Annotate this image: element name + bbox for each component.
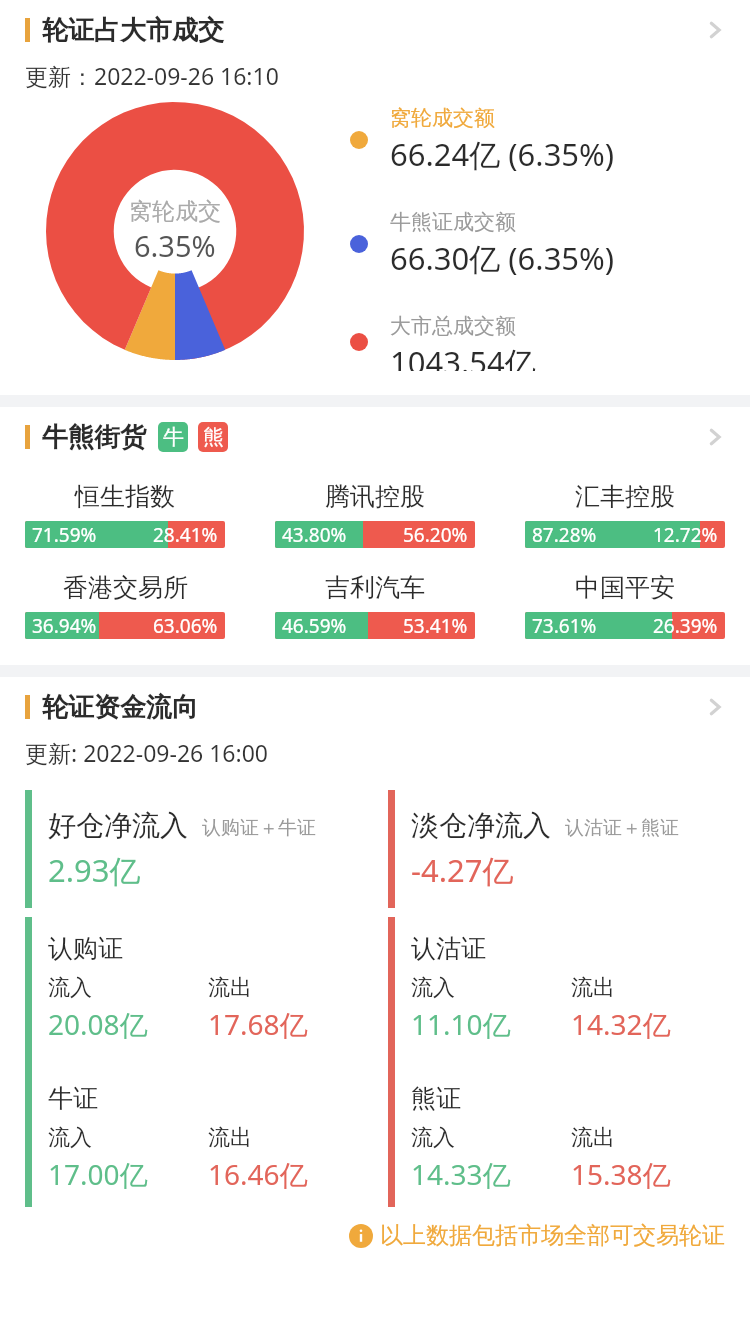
staticText: 56.20% — [403, 522, 468, 548]
button[interactable]: 窝轮成交额 — [350, 105, 750, 175]
button[interactable]: 牛熊街货 — [0, 407, 750, 467]
staticText: 11.10亿 — [411, 1005, 511, 1043]
staticText: 流出 — [571, 974, 615, 1002]
staticText: 更新: 2022-09-26 16:00 — [25, 737, 268, 768]
staticText: 63.06% — [153, 613, 218, 639]
staticText: 好仓净流入 — [48, 808, 188, 843]
staticText: 流出 — [208, 1124, 252, 1152]
staticText: 窝轮成交额 — [390, 105, 495, 131]
staticText: 淡仓净流入 — [411, 808, 551, 843]
staticText: 46.59% — [282, 613, 347, 639]
staticText: 大市总成交额 — [390, 313, 516, 339]
staticText: 36.94% — [32, 613, 97, 639]
button[interactable]: 轮证占大市成交 — [0, 0, 750, 60]
staticText: 熊 — [203, 424, 224, 450]
staticText: 恒生指数 — [75, 481, 175, 512]
staticText: 腾讯控股 — [325, 481, 425, 512]
button[interactable]: 大市总成交额 — [350, 313, 750, 371]
button[interactable]: 以上数据包括市场全部可交易轮证 — [0, 1221, 750, 1250]
staticText: 12.72% — [653, 522, 718, 548]
button[interactable]: More 牛熊街货 — [690, 412, 740, 462]
staticText: 牛 — [163, 424, 184, 450]
staticText: 流入 — [411, 1124, 455, 1152]
staticText: 20.08亿 — [48, 1005, 148, 1043]
staticText: 14.33亿 — [411, 1155, 511, 1193]
staticText: 28.41% — [153, 522, 218, 548]
staticText: 流入 — [411, 974, 455, 1002]
staticText: 认购证 — [48, 933, 123, 964]
button[interactable]: 轮证资金流向 — [0, 677, 750, 737]
staticText: 6.35% — [134, 226, 216, 265]
staticText: 轮证占大市成交 — [42, 14, 224, 47]
staticText: 16.46亿 — [208, 1155, 308, 1193]
button[interactable]: 43.80% — [275, 521, 475, 548]
staticText: 流入 — [48, 974, 92, 1002]
button[interactable]: 73.61% — [525, 612, 725, 639]
staticText: 66.30亿 (6.35%) — [390, 237, 615, 279]
staticText: 牛熊证成交额 — [390, 209, 516, 235]
staticText: 17.68亿 — [208, 1005, 308, 1043]
staticText: 1043.54亿 — [390, 341, 536, 371]
button[interactable]: More 轮证资金流向 — [690, 682, 740, 732]
staticText: 26.39% — [653, 613, 718, 639]
staticText: 牛熊街货 — [42, 421, 146, 454]
button[interactable]: More 轮证占大市成交 — [690, 5, 740, 55]
button[interactable]: 牛熊证成交额 — [350, 209, 750, 279]
button[interactable]: 认购证 — [25, 917, 378, 1207]
button[interactable]: 认沽证 — [388, 917, 725, 1207]
button[interactable]: 好仓净流入 — [25, 790, 378, 908]
button[interactable]: 46.59% — [275, 612, 475, 639]
staticText: 71.59% — [32, 522, 97, 548]
button[interactable]: 淡仓净流入 — [388, 790, 725, 908]
staticText: 香港交易所 — [63, 572, 188, 603]
button[interactable]: 87.28% — [525, 521, 725, 548]
staticText: 更新：2022-09-26 16:10 — [25, 60, 279, 91]
staticText: 73.61% — [532, 613, 597, 639]
staticText: 轮证资金流向 — [42, 691, 198, 724]
staticText: 认沽证＋熊证 — [565, 816, 679, 840]
staticText: 以上数据包括市场全部可交易轮证 — [380, 1221, 725, 1250]
button[interactable]: 71.59% — [25, 521, 225, 548]
staticText: 汇丰控股 — [575, 481, 675, 512]
staticText: 流入 — [48, 1124, 92, 1152]
staticText: 流出 — [571, 1124, 615, 1152]
staticText: 43.80% — [282, 522, 347, 548]
staticText: 牛证 — [48, 1083, 98, 1114]
staticText: 中国平安 — [575, 572, 675, 603]
staticText: 认购证＋牛证 — [202, 816, 316, 840]
staticText: 吉利汽车 — [325, 572, 425, 603]
staticText: 53.41% — [403, 613, 468, 639]
staticText: 14.32亿 — [571, 1005, 671, 1043]
staticText: 2.93亿 — [48, 849, 141, 891]
staticText: 17.00亿 — [48, 1155, 148, 1193]
button[interactable]: 36.94% — [25, 612, 225, 639]
staticText: 熊证 — [411, 1083, 461, 1114]
staticText: 87.28% — [532, 522, 597, 548]
staticText: 66.24亿 (6.35%) — [390, 133, 615, 175]
staticText: 窝轮成交 — [129, 197, 221, 226]
staticText: 15.38亿 — [571, 1155, 671, 1193]
staticText: 认沽证 — [411, 933, 486, 964]
staticText: 流出 — [208, 974, 252, 1002]
staticText: -4.27亿 — [411, 849, 514, 891]
